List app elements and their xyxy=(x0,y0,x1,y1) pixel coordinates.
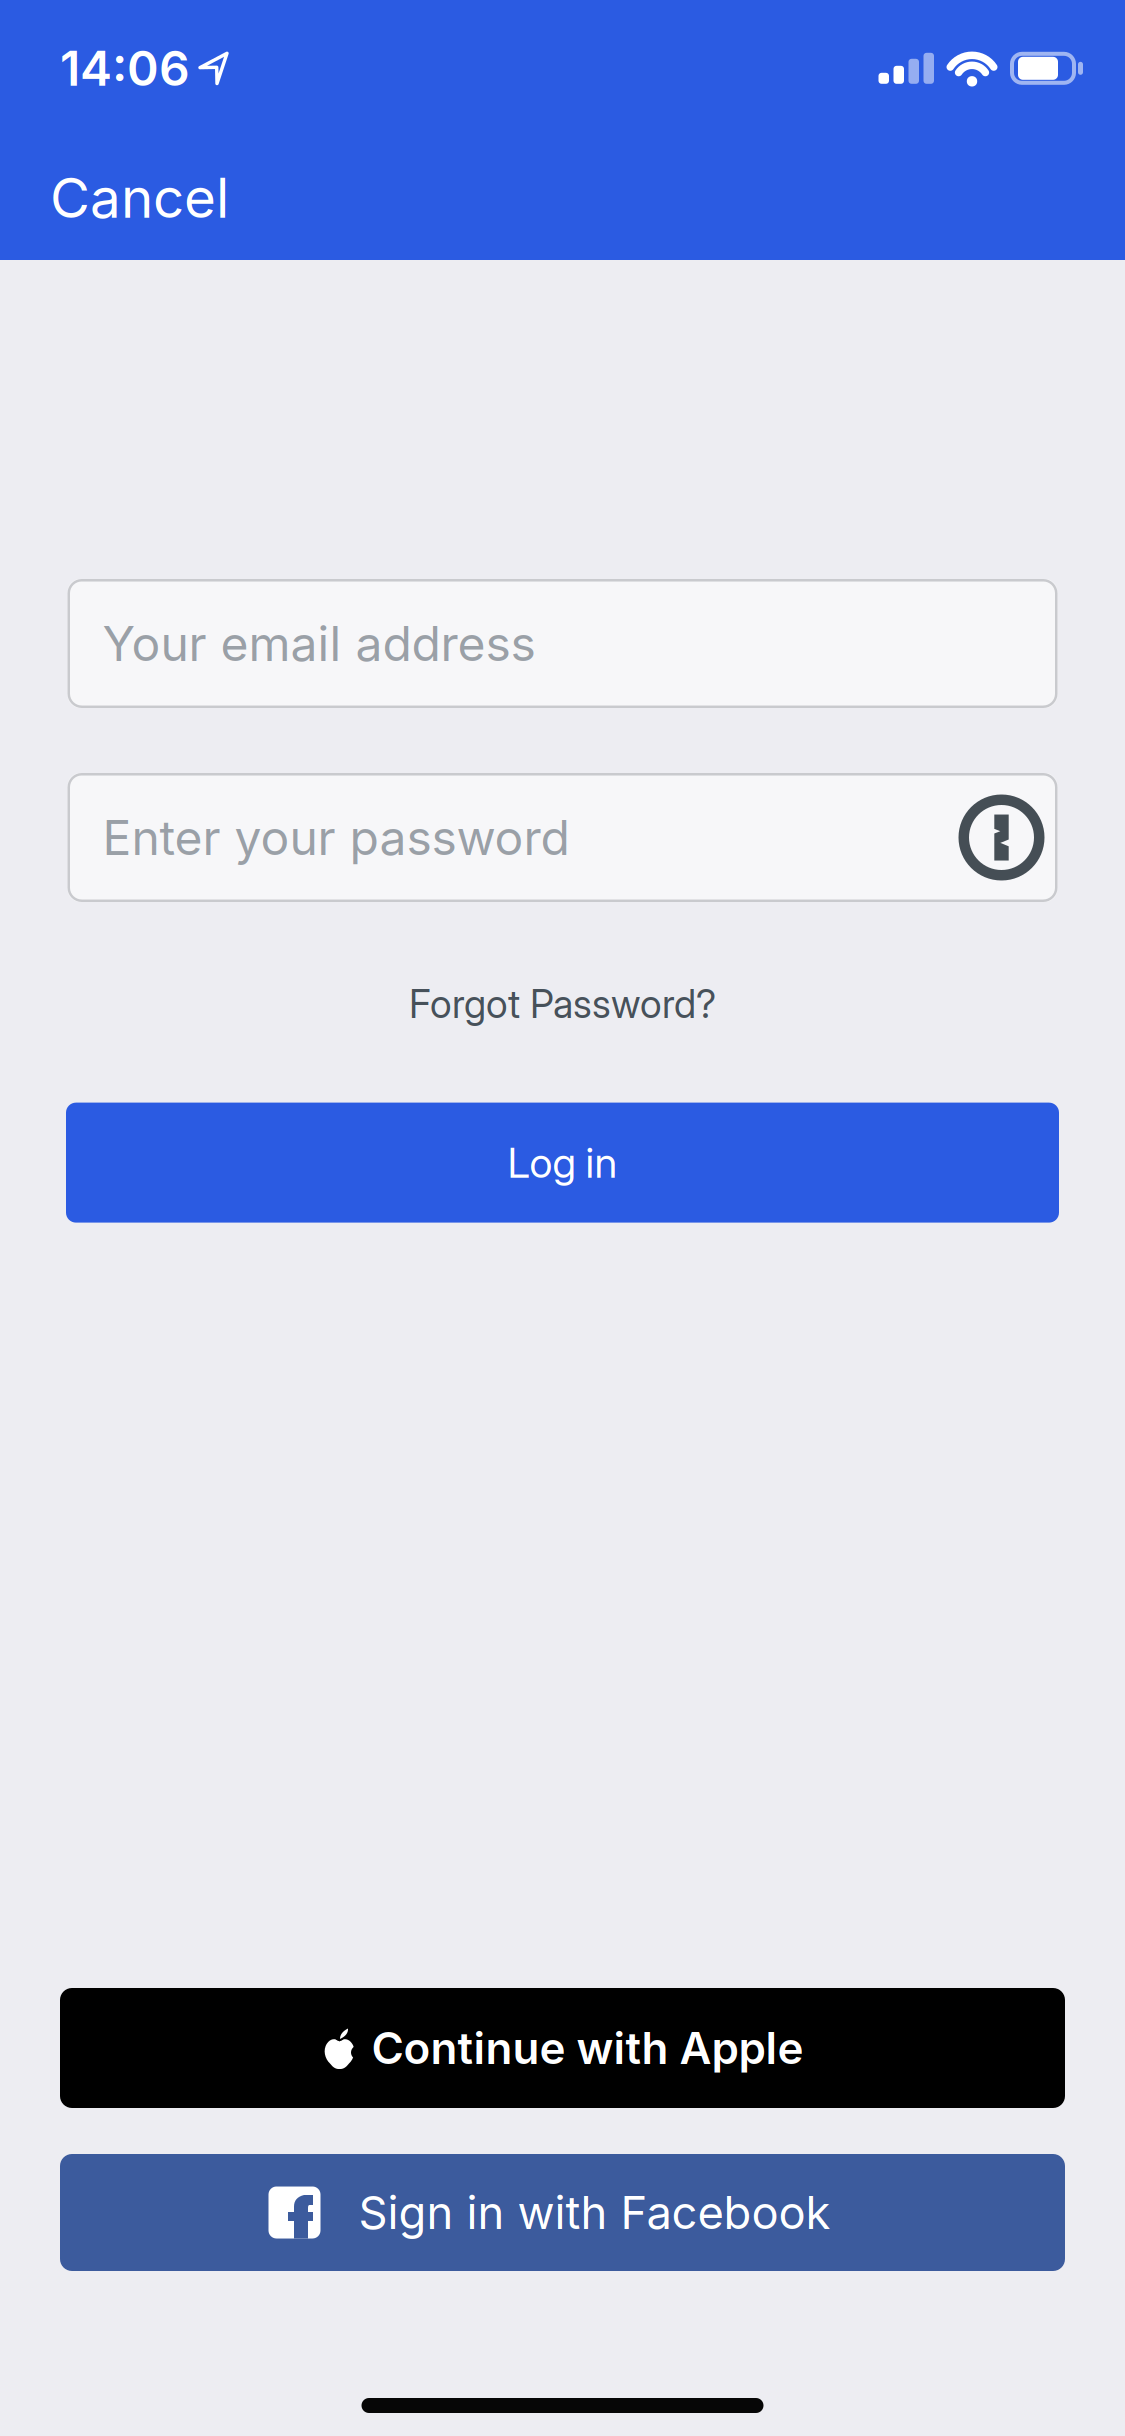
staticText: Continue with Apple xyxy=(371,2022,803,2074)
staticText: Log in xyxy=(507,1138,617,1187)
staticText: 14:06 xyxy=(60,40,190,97)
staticText: Sign in with Facebook xyxy=(358,2186,830,2239)
staticText: Forgot Password? xyxy=(409,981,716,1027)
staticText: Cancel xyxy=(50,165,229,230)
button[interactable]: Forgot Password? xyxy=(409,981,716,1027)
button[interactable]: Continue with Apple xyxy=(60,1988,1065,2108)
staticText: Your email address xyxy=(102,615,535,672)
button[interactable]: 1Password autofill xyxy=(958,794,1044,880)
button[interactable]: Sign in with Facebook xyxy=(60,2154,1065,2271)
button[interactable]: Cancel xyxy=(50,165,229,230)
button[interactable]: Log in xyxy=(66,1103,1059,1223)
staticText: Enter your password xyxy=(102,809,569,866)
